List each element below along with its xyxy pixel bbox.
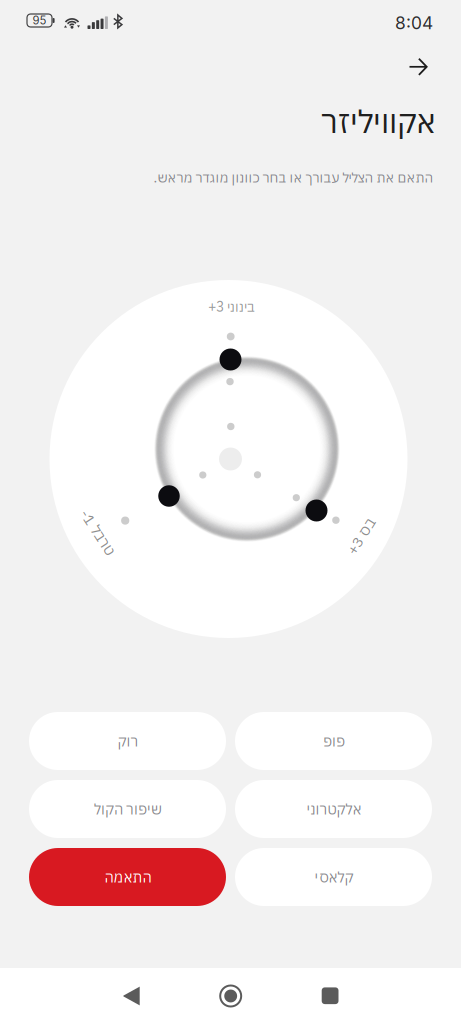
button[interactable]: התאמה <box>29 848 226 906</box>
staticText: התאם את הצליל עבורך או בחר כוונון מוגדר … <box>153 169 433 186</box>
staticText: 95 <box>32 14 46 27</box>
button[interactable]: Back <box>103 967 159 1024</box>
button[interactable]: Back <box>397 46 440 88</box>
button[interactable]: קלאסי <box>235 848 432 906</box>
staticText: קלאסי <box>314 867 353 887</box>
staticText: פופ <box>322 731 344 751</box>
staticText: 8:04 <box>395 12 433 33</box>
staticText: טרבל 1- <box>72 522 124 542</box>
button[interactable]: Recents <box>303 968 357 1023</box>
staticText: בס 3+ <box>340 526 380 546</box>
button[interactable]: רוק <box>29 712 226 770</box>
staticText: שיפור הקול <box>93 799 161 819</box>
button[interactable]: אלקטרוני <box>235 780 432 838</box>
staticText: אלקטרוני <box>306 799 361 819</box>
staticText: אקוויליזר <box>320 100 435 142</box>
staticText: רוק <box>117 731 138 751</box>
button[interactable]: פופ <box>235 712 432 770</box>
staticText: התאמה <box>104 867 151 887</box>
button[interactable]: Home <box>200 965 261 1024</box>
button[interactable]: שיפור הקול <box>29 780 226 838</box>
staticText: בינוני 3+ <box>207 297 254 316</box>
